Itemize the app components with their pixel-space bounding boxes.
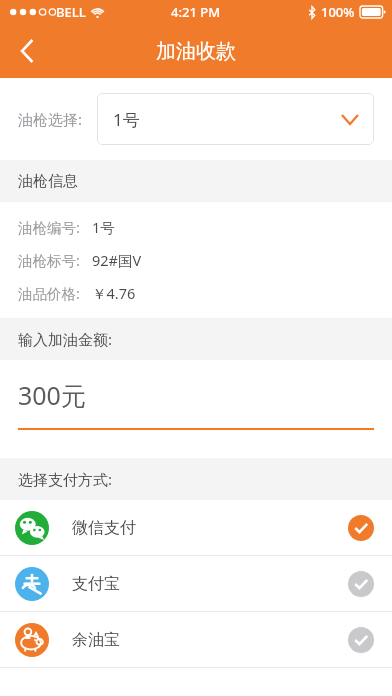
- staticText: 300元: [18, 378, 86, 412]
- button[interactable]: 支付宝: [0, 556, 392, 611]
- staticText: 92#国V: [92, 250, 142, 270]
- staticText: 输入加油金额:: [18, 329, 113, 349]
- button[interactable]: 余油宝: [0, 612, 392, 667]
- button[interactable]: 1号: [97, 93, 374, 145]
- staticText: 微信支付: [72, 518, 136, 538]
- button[interactable]: 微信支付: [0, 500, 392, 555]
- button[interactable]: Back: [0, 24, 54, 78]
- staticText: 油品价格:: [18, 283, 80, 303]
- staticText: BELL: [56, 3, 86, 21]
- staticText: 1号: [113, 108, 140, 131]
- staticText: 100%: [321, 3, 355, 21]
- staticText: 油枪标号:: [18, 250, 80, 270]
- staticText: 余油宝: [72, 630, 120, 650]
- staticText: 1号: [92, 217, 115, 237]
- staticText: ￥4.76: [92, 283, 136, 303]
- staticText: 油枪选择:: [18, 109, 83, 129]
- staticText: 支付宝: [72, 574, 120, 594]
- staticText: 选择支付方式:: [18, 469, 113, 489]
- staticText: 4:21 PM: [171, 3, 221, 21]
- staticText: 加油收款: [156, 39, 236, 64]
- staticText: 油枪编号:: [18, 217, 80, 237]
- staticText: 油枪信息: [18, 172, 78, 191]
